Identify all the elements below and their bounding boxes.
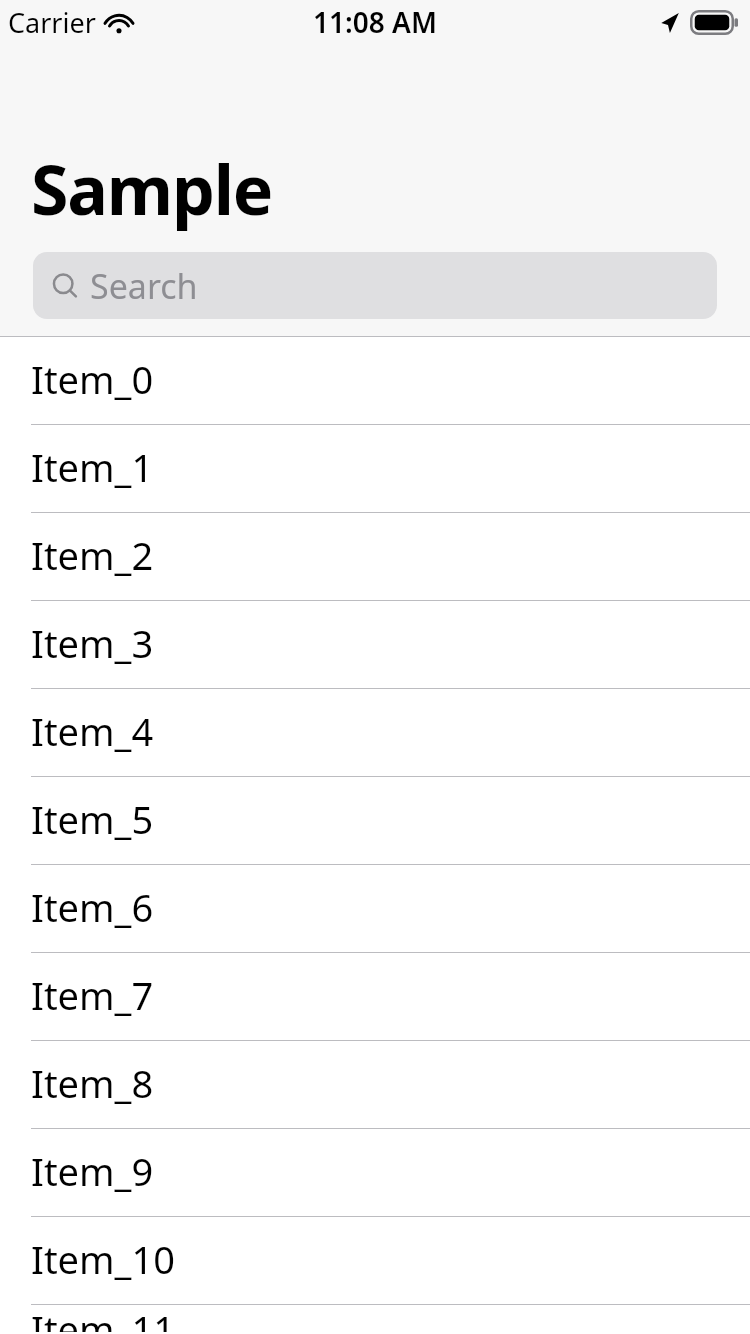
- staticText: 11:08 AM: [313, 3, 437, 41]
- button[interactable]: Item_9: [0, 1129, 750, 1217]
- staticText: Item_0: [31, 353, 154, 405]
- staticText: Item_3: [31, 617, 154, 669]
- button[interactable]: Item_3: [0, 601, 750, 689]
- staticText: Item_10: [31, 1233, 175, 1285]
- staticText: Item_9: [31, 1145, 154, 1197]
- button[interactable]: Item_2: [0, 513, 750, 601]
- staticText: Search: [90, 263, 198, 309]
- staticText: Item_6: [31, 881, 154, 933]
- button[interactable]: Item_4: [0, 689, 750, 777]
- button[interactable]: Item_8: [0, 1041, 750, 1129]
- button[interactable]: Item_10: [0, 1217, 750, 1305]
- button[interactable]: Item_5: [0, 777, 750, 865]
- staticText: Item_8: [31, 1057, 154, 1109]
- button[interactable]: Item_7: [0, 953, 750, 1041]
- staticText: Item_11: [31, 1303, 175, 1332]
- other: Location: [656, 11, 680, 35]
- button[interactable]: Item_6: [0, 865, 750, 953]
- staticText: Item_5: [31, 793, 154, 845]
- button[interactable]: Item_1: [0, 425, 750, 513]
- button[interactable]: Item_11: [0, 1305, 750, 1334]
- staticText: Carrier: [8, 4, 96, 41]
- staticText: Sample: [31, 142, 273, 235]
- staticText: Item_7: [31, 969, 154, 1021]
- staticText: Item_4: [31, 705, 154, 757]
- button[interactable]: Item_0: [0, 337, 750, 425]
- staticText: Item_1: [31, 441, 154, 493]
- staticText: Item_2: [31, 529, 154, 581]
- button[interactable]: Search: [33, 252, 717, 319]
